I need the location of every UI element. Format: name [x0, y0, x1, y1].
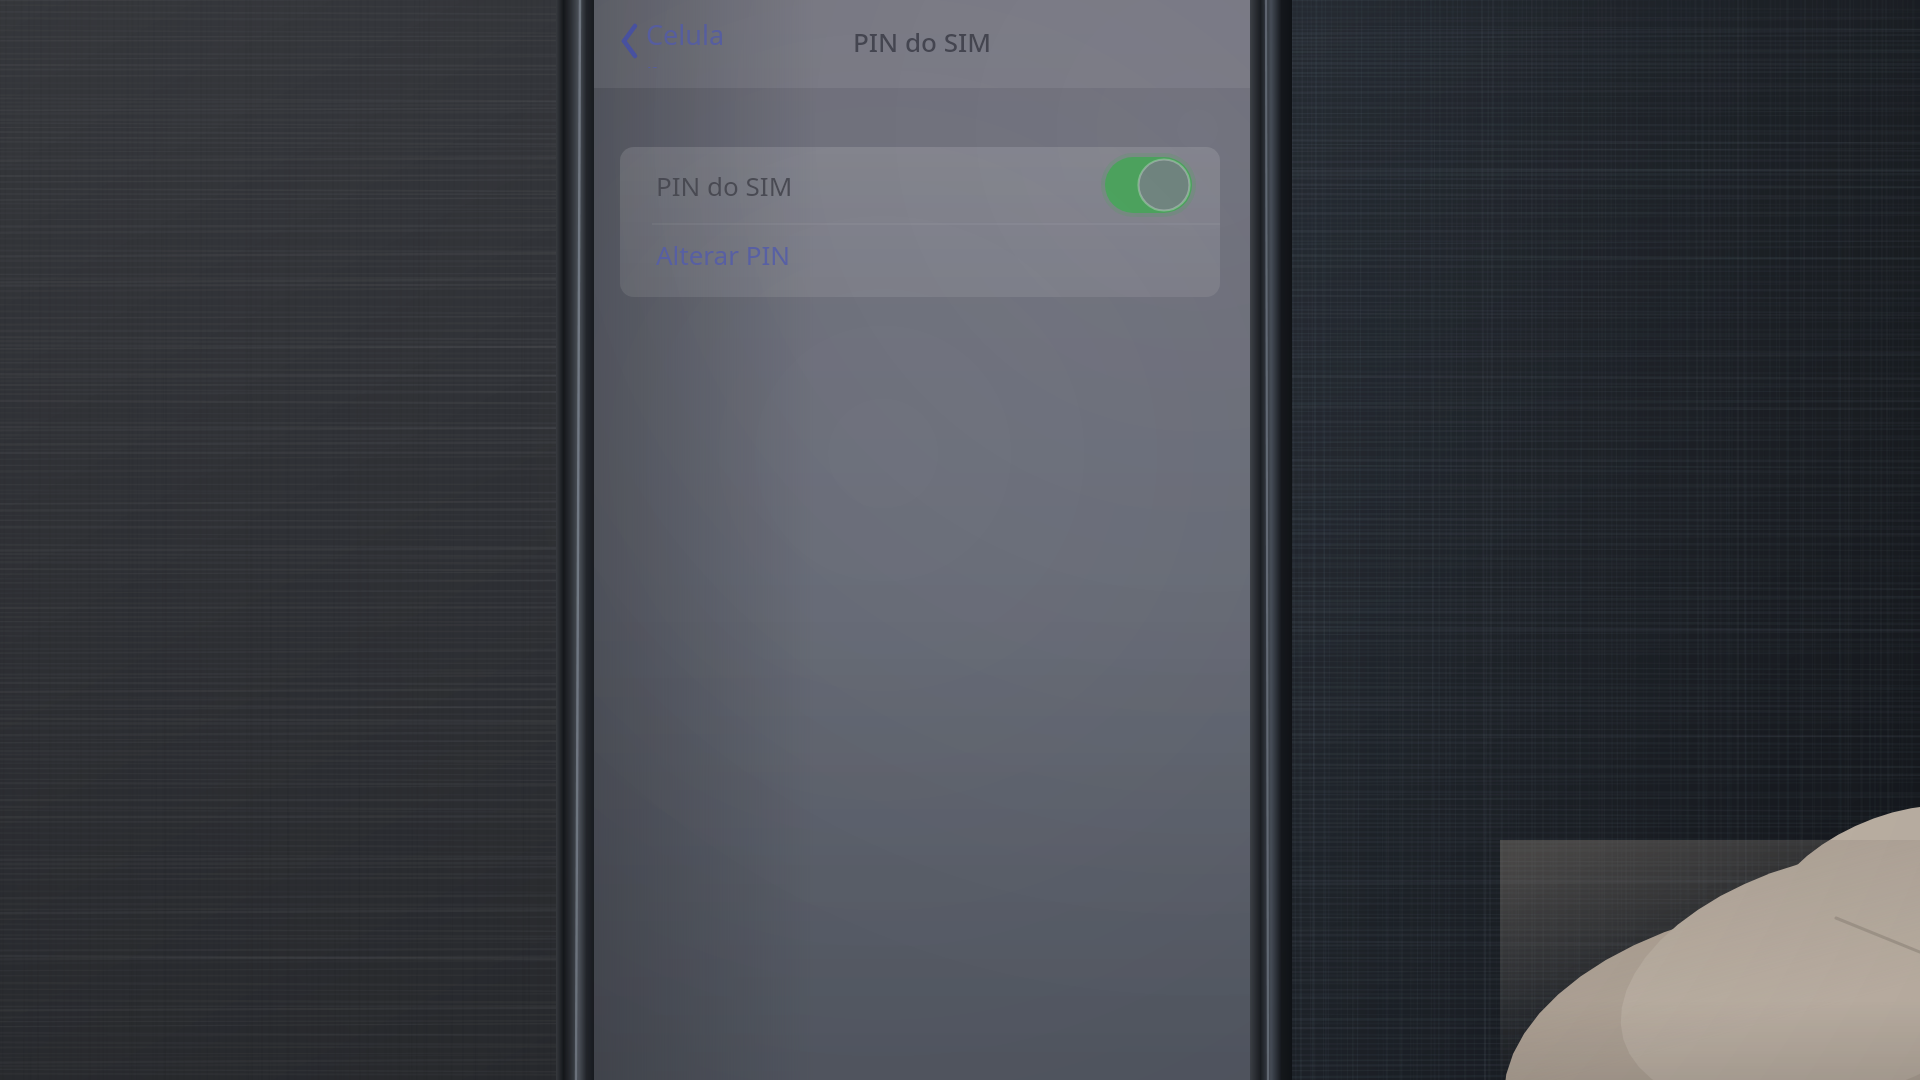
button[interactable]: Voltar para Celular [604, 16, 728, 68]
staticText: PIN do SIM [853, 24, 992, 59]
button[interactable]: Alterar PIN [620, 224, 1220, 297]
staticText: PIN do SIM [656, 168, 793, 203]
staticText: Alterar PIN [656, 237, 790, 272]
button[interactable]: PIN do SIM [620, 147, 1220, 224]
staticText: Celular [646, 16, 728, 68]
